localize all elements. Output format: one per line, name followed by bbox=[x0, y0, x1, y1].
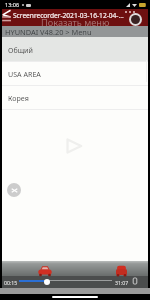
staticText: HYUNDAI V48.20 > Menu bbox=[5, 27, 92, 37]
staticText: USA AREA bbox=[8, 69, 41, 79]
button[interactable]: Корея bbox=[0, 86, 150, 110]
staticText: 13:06 bbox=[5, 1, 20, 8]
button[interactable]: Mute bbox=[7, 183, 21, 197]
button[interactable]: Общий bbox=[0, 37, 150, 62]
staticText: Screenrecorder-2021-03-16-12-04-... bbox=[13, 11, 124, 20]
staticText: 31:07 bbox=[115, 279, 129, 286]
button[interactable]: USA AREA bbox=[0, 62, 150, 86]
staticText: 00:15 bbox=[4, 279, 18, 286]
button[interactable]: Fullscreen bbox=[132, 278, 138, 284]
button[interactable]: Seek position bbox=[44, 279, 50, 285]
staticText: Общий bbox=[8, 45, 33, 55]
staticText: Показать меню bbox=[41, 16, 110, 29]
button[interactable]: Play bbox=[65, 137, 83, 155]
staticText: Корея bbox=[8, 93, 29, 103]
